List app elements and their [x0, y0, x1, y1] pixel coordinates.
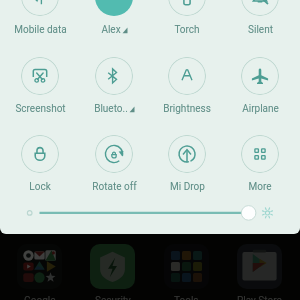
- staticText: Silent: [248, 24, 273, 36]
- button[interactable]: Tools: [156, 244, 216, 300]
- staticText: Mi Drop: [170, 181, 205, 193]
- staticText: More: [248, 181, 272, 193]
- button[interactable]: Security: [82, 244, 142, 300]
- button[interactable]: Mobile data: [4, 0, 76, 33]
- staticText: Blueto..: [94, 103, 128, 115]
- staticText: Rotate off: [92, 181, 137, 193]
- button[interactable]: Lock: [4, 135, 76, 190]
- button[interactable]: Brightness slider: [0, 200, 300, 230]
- button[interactable]: Rotate off: [78, 135, 150, 190]
- staticText: Brightness: [163, 103, 211, 115]
- button[interactable]: More: [224, 135, 296, 190]
- button[interactable]: Brightness: [151, 57, 223, 112]
- button[interactable]: Silent: [224, 0, 296, 33]
- button[interactable]: Alex: [78, 0, 150, 33]
- staticText: Play Store: [237, 295, 282, 300]
- button[interactable]: Play Store: [229, 244, 289, 300]
- staticText: Lock: [29, 181, 51, 193]
- staticText: Security: [95, 295, 131, 300]
- staticText: Mobile data: [14, 24, 67, 36]
- button[interactable]: Torch: [151, 0, 223, 33]
- staticText: Torch: [174, 24, 200, 36]
- staticText: Alex: [101, 24, 121, 36]
- staticText: Tools: [174, 295, 199, 300]
- button[interactable]: Blueto..: [78, 57, 150, 112]
- staticText: Airplane: [242, 103, 279, 115]
- button[interactable]: Airplane: [224, 57, 296, 112]
- button[interactable]: Google: [9, 244, 69, 300]
- button[interactable]: Screenshot: [4, 57, 76, 112]
- staticText: Google: [24, 295, 56, 300]
- button[interactable]: Mi Drop: [151, 135, 223, 190]
- staticText: Screenshot: [15, 103, 66, 115]
